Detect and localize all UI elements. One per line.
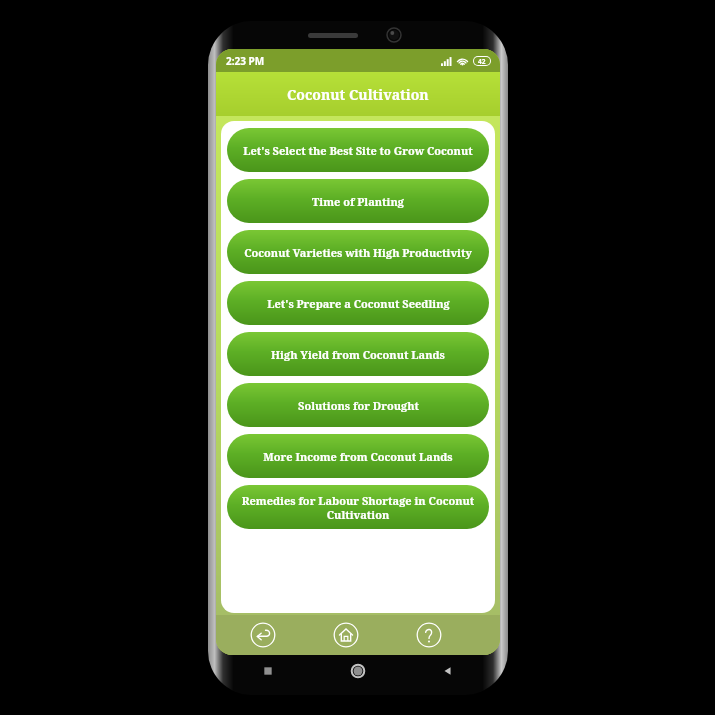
staticText: 2:23 PM [226,54,265,68]
staticText: Time of Planting [312,194,404,209]
button[interactable]: Time of Planting [227,179,489,223]
button[interactable]: Home [333,622,359,648]
button[interactable]: Let's Prepare a Coconut Seedling [227,281,489,325]
staticText: Coconut Cultivation [287,85,429,104]
button[interactable]: Let's Select the Best Site to Grow Cocon… [227,128,489,172]
button[interactable]: High Yield from Coconut Lands [227,332,489,376]
staticText: Solutions for Drought [298,398,419,413]
staticText: More Income from Coconut Lands [263,449,453,464]
staticText: Coconut Varieties with High Productivity [244,245,472,260]
button[interactable]: Remedies for Labour Shortage in Coconut … [227,485,489,529]
button[interactable]: More Income from Coconut Lands [227,434,489,478]
staticText: Let's Prepare a Coconut Seedling [267,296,450,311]
staticText: High Yield from Coconut Lands [271,347,445,362]
button[interactable]: Coconut Varieties with High Productivity [227,230,489,274]
button[interactable]: Solutions for Drought [227,383,489,427]
staticText: Let's Select the Best Site to Grow Cocon… [243,143,473,158]
staticText: Remedies for Labour Shortage in Coconut … [237,493,479,522]
button[interactable]: Back [250,622,276,648]
staticText: 42 [478,57,486,65]
button[interactable]: Help [416,622,442,648]
